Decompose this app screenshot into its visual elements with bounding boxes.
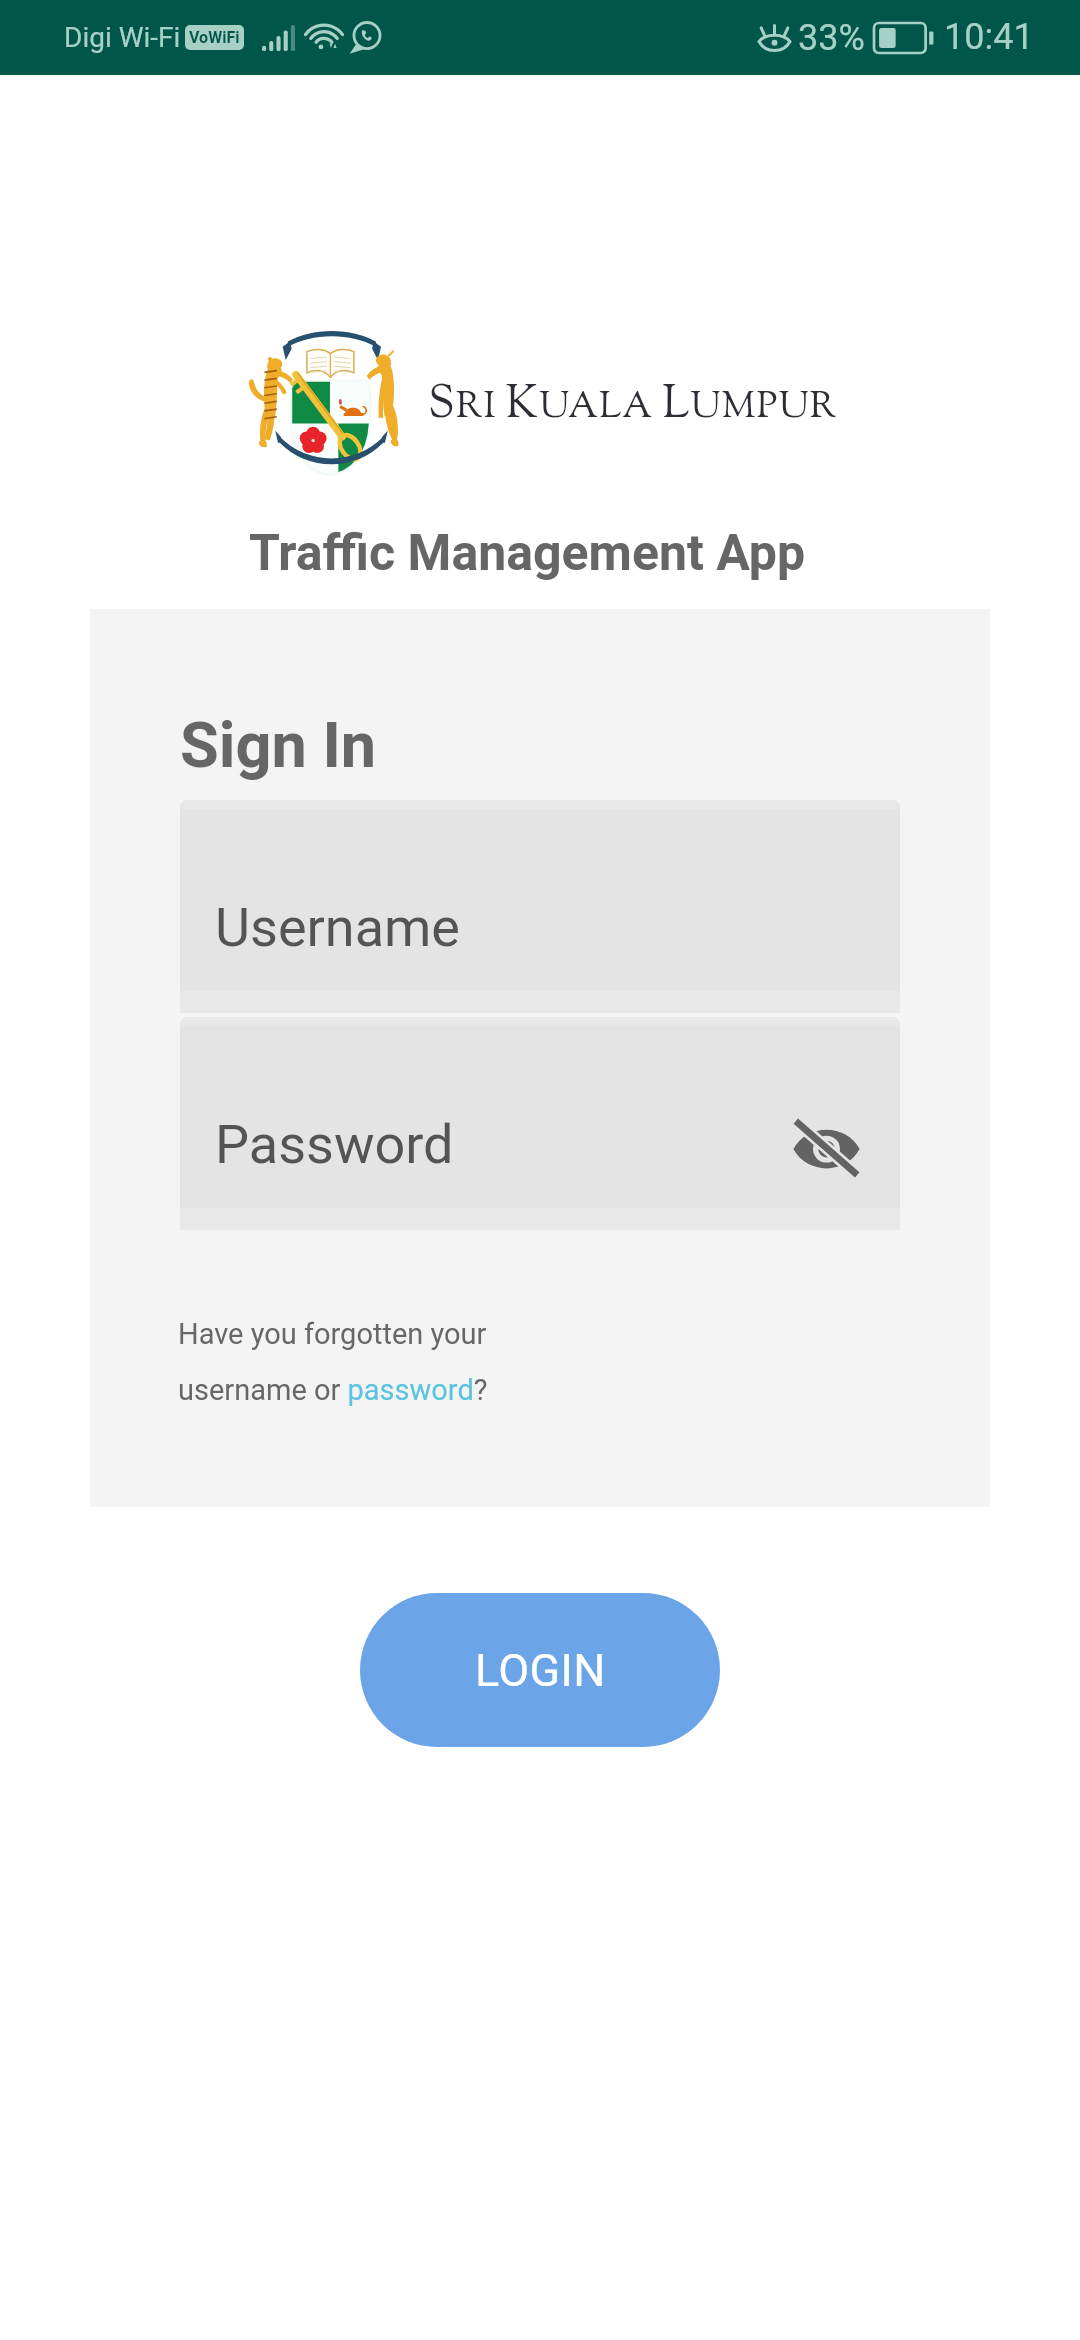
staticText: 10:41 bbox=[944, 16, 1034, 58]
staticText: Digi Wi-Fi bbox=[64, 21, 181, 54]
staticText: Have you forgotten your bbox=[178, 1317, 487, 1351]
staticText: Username bbox=[215, 896, 461, 959]
staticText: 33% bbox=[798, 17, 865, 59]
staticText: SRI KUALA LUMPUR bbox=[428, 374, 838, 439]
button[interactable]: Password bbox=[180, 1017, 900, 1230]
staticText: LOGIN bbox=[475, 1644, 606, 1697]
button[interactable]: LOGIN bbox=[360, 1593, 720, 1747]
button[interactable]: username or password? bbox=[178, 1373, 488, 1407]
staticText: VoWiFi bbox=[189, 28, 240, 47]
button[interactable]: Username bbox=[180, 800, 900, 1013]
staticText: Password bbox=[215, 1113, 454, 1176]
button[interactable]: Show password bbox=[780, 1102, 872, 1194]
staticText: Sign In bbox=[180, 709, 377, 783]
staticText: Traffic Management App bbox=[0, 524, 1067, 583]
